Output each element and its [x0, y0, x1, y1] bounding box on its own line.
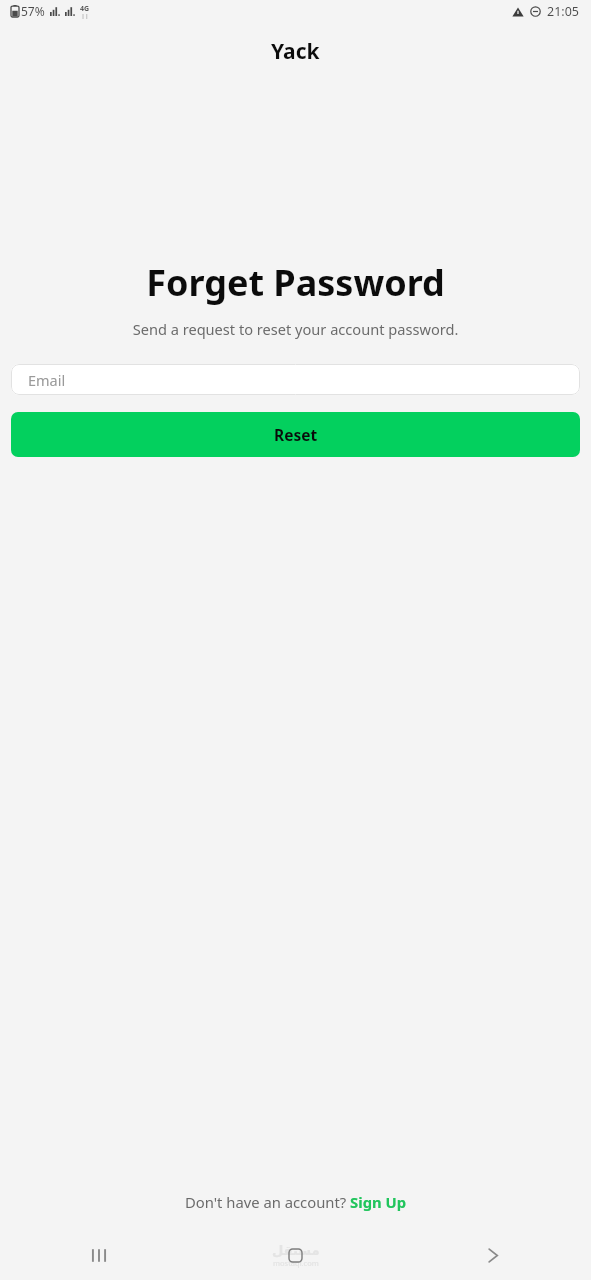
button[interactable]: Reset [11, 412, 580, 457]
button[interactable]: Email [11, 364, 580, 395]
button[interactable]: Home [197, 1238, 394, 1272]
staticText: Forget Password [0, 258, 591, 307]
staticText: 57% [21, 3, 45, 19]
staticText: 21:05 [547, 3, 579, 20]
staticText: mostaql.com [273, 1258, 319, 1268]
staticText: 4G [80, 4, 90, 14]
button[interactable]: Recent apps [0, 1238, 197, 1272]
staticText: Email [28, 370, 66, 390]
staticText: Yack [271, 37, 320, 66]
staticText: Send a request to reset your account pas… [18, 319, 573, 339]
button[interactable]: Don't have an account? Sign Up [0, 1184, 591, 1220]
staticText: Reset [274, 424, 318, 445]
staticText: Don't have an account? Sign Up [185, 1192, 407, 1212]
staticText: مستقل [272, 1243, 320, 1258]
button[interactable]: Back [394, 1238, 591, 1272]
